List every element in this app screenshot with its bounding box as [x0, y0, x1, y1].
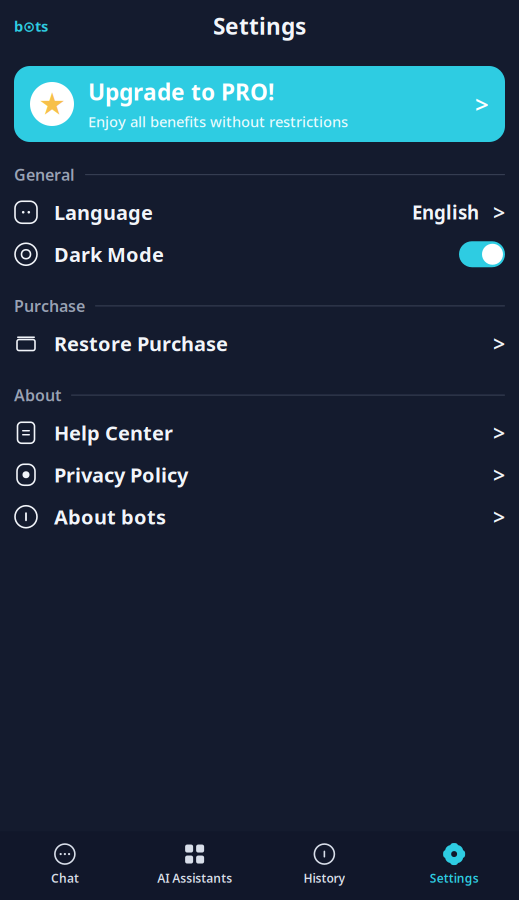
- staticText: >: [493, 419, 505, 447]
- staticText: About bots: [54, 503, 166, 530]
- staticText: Chat: [51, 870, 79, 886]
- button[interactable]: bots home: [0, 10, 62, 42]
- button[interactable]: Help Center: [0, 412, 519, 454]
- staticText: History: [303, 870, 345, 886]
- button[interactable]: About bots: [0, 496, 519, 538]
- staticText: Settings: [430, 870, 479, 886]
- staticText: >: [493, 503, 505, 531]
- button[interactable]: Privacy Policy: [0, 454, 519, 496]
- button[interactable]: Restore Purchase: [0, 322, 519, 364]
- staticText: English: [412, 200, 479, 225]
- staticText: >: [493, 461, 505, 489]
- button[interactable]: Chat: [0, 837, 130, 892]
- staticText: Help Center: [54, 419, 173, 446]
- staticText: b⊙ts: [14, 16, 48, 36]
- staticText: Settings: [213, 11, 306, 41]
- staticText: Dark Mode: [54, 241, 164, 268]
- staticText: Restore Purchase: [54, 330, 228, 357]
- staticText: Privacy Policy: [54, 461, 188, 488]
- button[interactable]: History: [259, 837, 389, 892]
- button[interactable]: Settings: [389, 837, 519, 892]
- button[interactable]: Language: [0, 191, 519, 233]
- button[interactable]: AI Assistants: [130, 837, 260, 892]
- staticText: Upgrade to PRO!: [88, 77, 274, 107]
- staticText: >: [493, 329, 505, 358]
- staticText: Enjoy all benefits without restrictions: [88, 112, 348, 131]
- staticText: >: [493, 198, 505, 226]
- staticText: ★: [38, 87, 65, 121]
- staticText: AI Assistants: [157, 870, 232, 886]
- staticText: General: [14, 164, 75, 185]
- staticText: About: [14, 384, 61, 406]
- staticText: Language: [54, 199, 153, 226]
- button[interactable]: ★: [14, 66, 505, 142]
- staticText: Purchase: [14, 295, 85, 316]
- button[interactable]: Dark Mode toggle: [459, 241, 505, 267]
- staticText: >: [475, 88, 489, 120]
